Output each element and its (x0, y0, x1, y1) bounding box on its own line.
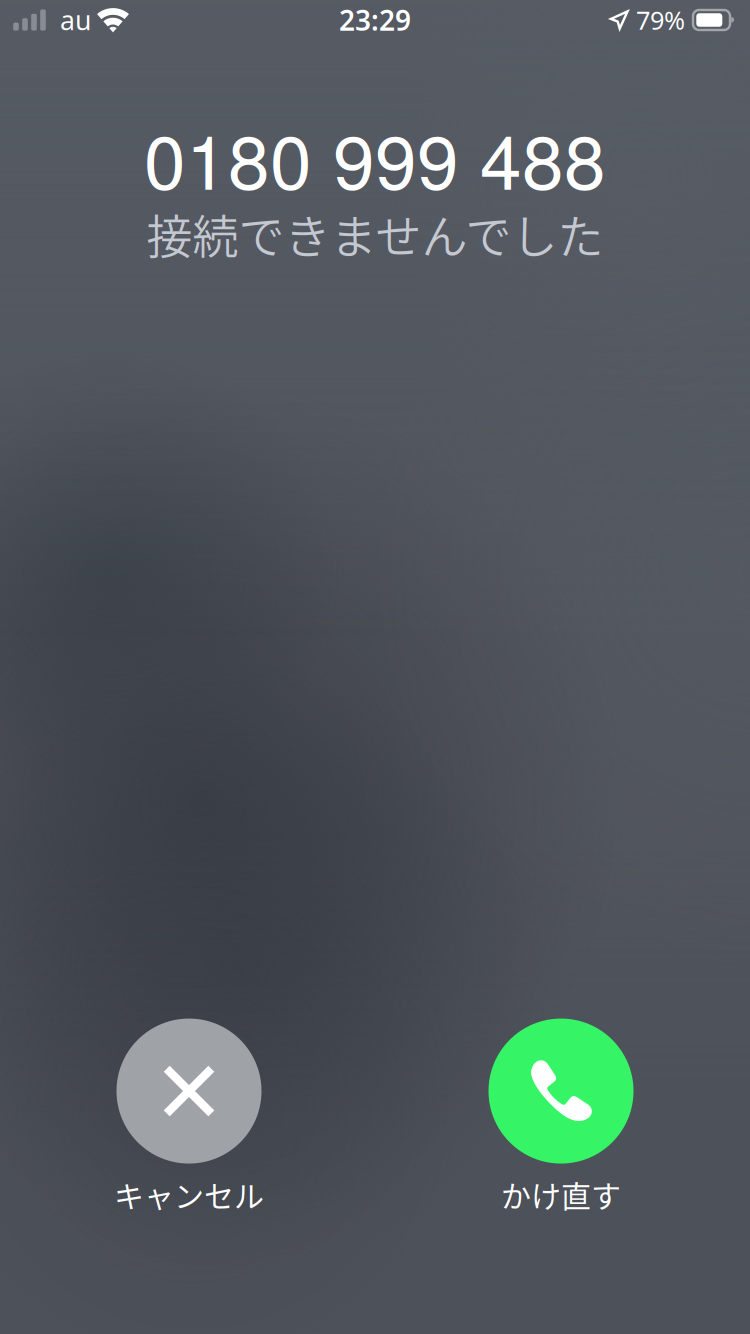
staticText: au (60, 2, 91, 38)
button[interactable]: キャンセル (103, 1019, 275, 1216)
staticText: 接続できませんでした (146, 200, 603, 266)
staticText: 79% (636, 3, 685, 37)
staticText: 0180 999 488 (144, 104, 606, 211)
staticText: キャンセル (114, 1173, 264, 1216)
staticText: 23:29 (339, 1, 411, 39)
staticText: かけ直す (501, 1173, 621, 1216)
button[interactable]: かけ直す (475, 1019, 647, 1216)
